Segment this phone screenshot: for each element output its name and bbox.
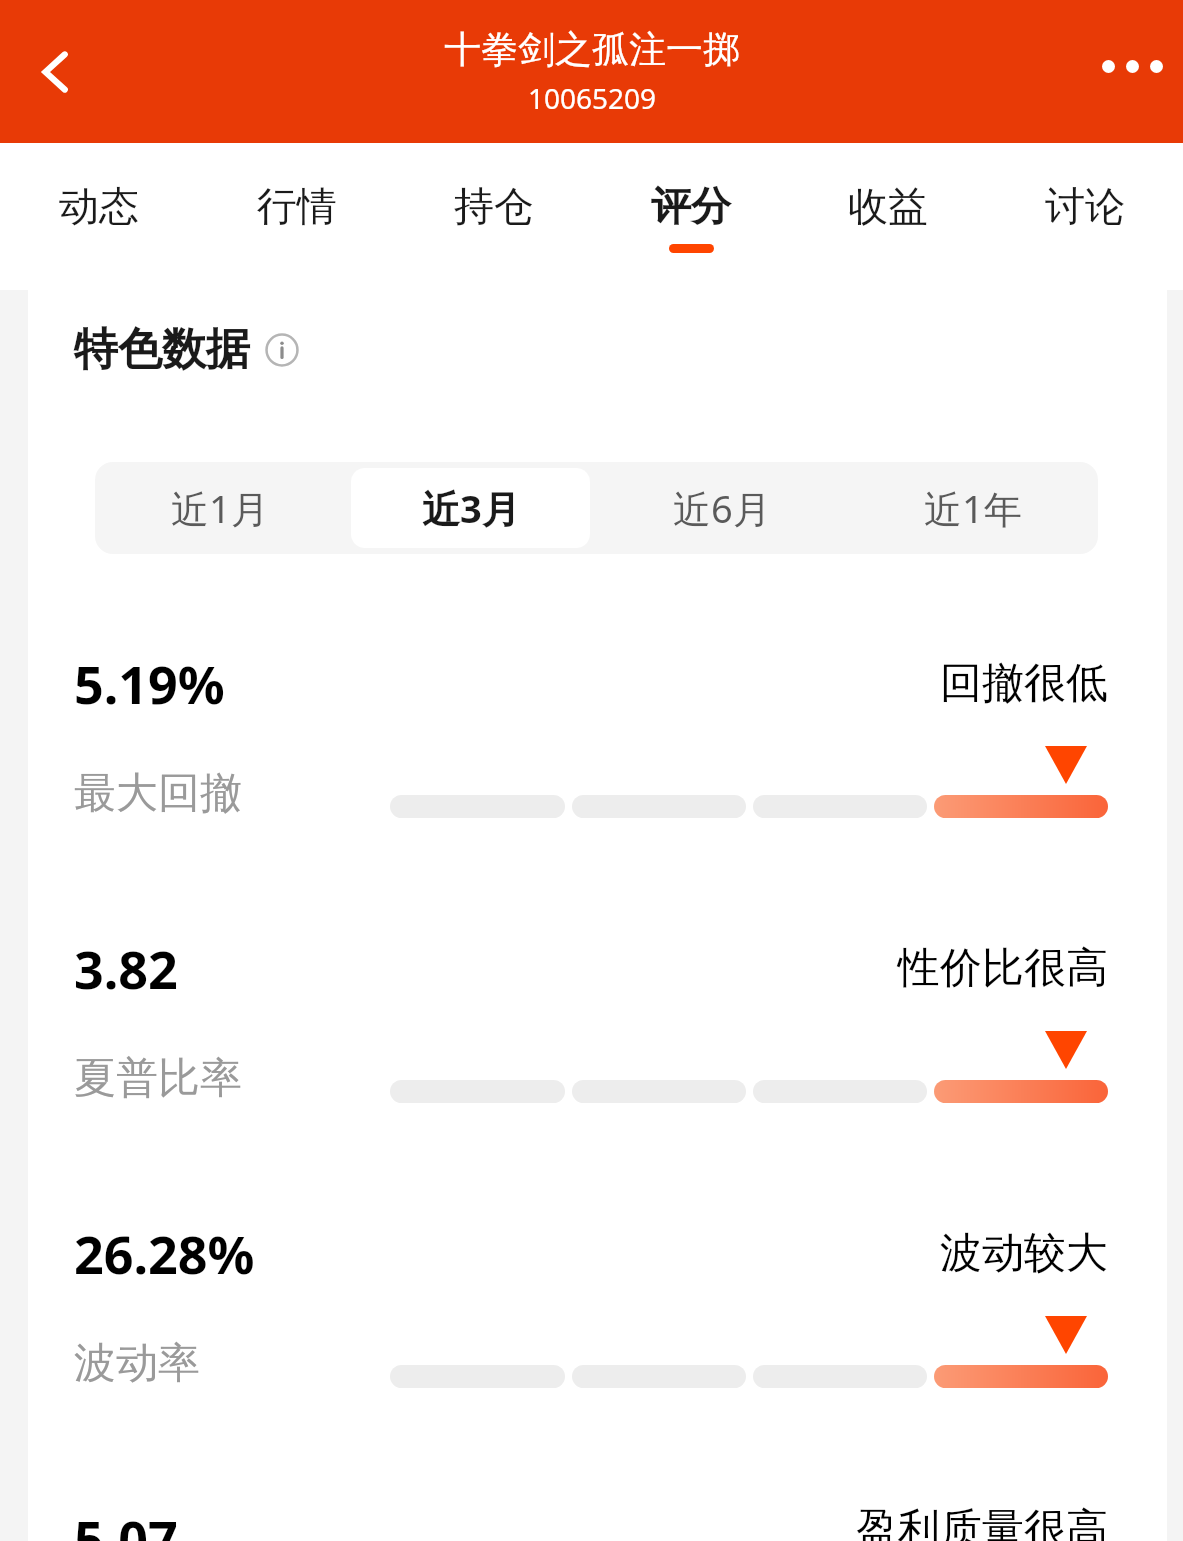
staticText: 收益 xyxy=(848,181,928,231)
button[interactable]: 近6月 xyxy=(602,468,841,548)
staticText: 评分 xyxy=(651,181,731,231)
staticText: 波动较大 xyxy=(940,1227,1108,1280)
staticText: 近3月 xyxy=(422,482,520,534)
staticText: 讨论 xyxy=(1045,181,1125,231)
button[interactable]: 动态 xyxy=(0,143,198,290)
button[interactable]: 收益 xyxy=(789,143,986,290)
button[interactable]: 持仓 xyxy=(395,143,592,290)
staticText: 近6月 xyxy=(673,482,771,534)
staticText: 最大回撤 xyxy=(74,767,242,820)
button[interactable]: 5.19% xyxy=(28,648,1167,841)
button[interactable]: More options xyxy=(1095,29,1169,103)
staticText: 特色数据 xyxy=(74,322,250,377)
staticText: 近1年 xyxy=(924,482,1022,534)
button[interactable]: Info about 特色数据 xyxy=(264,332,300,368)
staticText: 近1月 xyxy=(171,482,269,534)
button[interactable]: 评分 xyxy=(592,143,789,290)
staticText: 10065209 xyxy=(528,79,657,117)
staticText: 十拳剑之孤注一掷 xyxy=(444,26,740,73)
button[interactable]: 讨论 xyxy=(986,143,1183,290)
staticText: 动态 xyxy=(59,181,139,231)
staticText: 5.07 xyxy=(74,1503,178,1541)
staticText: 盈利质量很高 xyxy=(856,1503,1108,1541)
button[interactable]: 26.28% xyxy=(28,1218,1167,1411)
staticText: 26.28% xyxy=(74,1218,255,1289)
staticText: 行情 xyxy=(257,181,337,231)
button[interactable]: 近1月 xyxy=(101,468,339,548)
button[interactable]: Back xyxy=(18,34,94,110)
staticText: 回撤很低 xyxy=(940,657,1108,710)
staticText: 持仓 xyxy=(454,181,534,231)
staticText: 5.19% xyxy=(74,648,225,719)
staticText: 夏普比率 xyxy=(74,1052,242,1105)
button[interactable]: 近1年 xyxy=(853,468,1092,548)
staticText: 性价比很高 xyxy=(898,942,1108,995)
button[interactable]: 近3月 xyxy=(351,468,590,548)
staticText: 3.82 xyxy=(74,933,178,1004)
button[interactable]: 3.82 xyxy=(28,933,1167,1126)
button[interactable]: 行情 xyxy=(198,143,395,290)
staticText: 波动率 xyxy=(74,1337,200,1390)
button[interactable]: 5.07 xyxy=(28,1503,1167,1541)
